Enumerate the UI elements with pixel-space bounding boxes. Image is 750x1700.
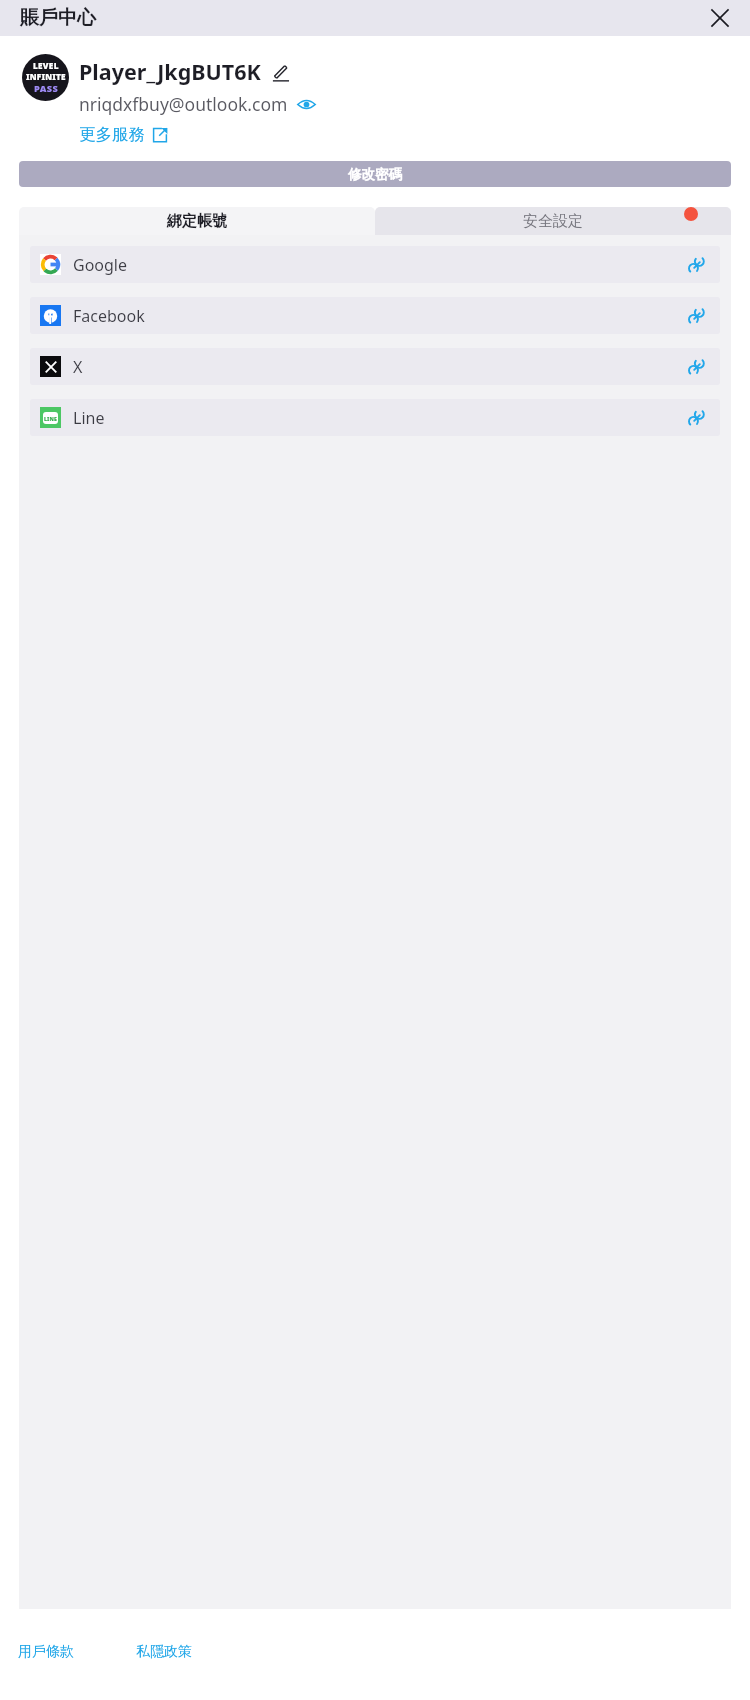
button[interactable]: Link Facebook [680,299,714,333]
staticText: Facebook [73,305,145,327]
staticText: 賬戶中心 [20,6,96,30]
button[interactable]: X [30,348,720,385]
button[interactable]: Show email [295,93,317,115]
staticText: 綁定帳號 [167,212,227,231]
button[interactable]: Close [702,0,738,36]
button[interactable]: Google [30,246,720,283]
staticText: 私隱政策 [136,1643,192,1661]
staticText: 修改密碼 [348,166,402,183]
staticText: INFINITE [26,71,66,82]
button[interactable]: Link Line [680,401,714,435]
button[interactable]: Link X [680,350,714,384]
staticText: 用戶條款 [18,1643,74,1661]
button[interactable]: 綁定帳號 [19,207,375,235]
staticText: Line [73,407,105,429]
staticText: LEVEL [33,60,59,71]
button[interactable]: 安全設定 [375,207,731,235]
button[interactable]: Edit name [268,60,292,84]
staticText: PASS [34,82,59,95]
button[interactable]: Avatar [22,54,69,101]
button[interactable]: LINE [30,399,720,436]
staticText: LINE [44,415,57,422]
button[interactable]: 私隱政策 [136,1643,192,1661]
button[interactable]: 更多服務 [79,124,168,145]
staticText: Google [73,254,128,276]
button[interactable]: Link Google [680,248,714,282]
staticText: 安全設定 [523,212,583,231]
staticText: 更多服務 [79,124,145,145]
button[interactable]: Facebook [30,297,720,334]
button[interactable]: 用戶條款 [18,1643,74,1661]
button[interactable]: 修改密碼 [19,161,731,187]
staticText: Player_JkgBUT6K [79,57,261,86]
staticText: nriqdxfbuy@outlook.com [79,92,288,116]
staticText: X [73,356,83,378]
